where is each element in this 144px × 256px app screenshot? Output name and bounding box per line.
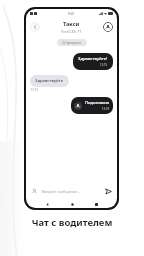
staticText: Такси xyxy=(63,20,80,28)
staticText: 22 февраля xyxy=(62,40,82,45)
staticText: 12:16 xyxy=(31,88,39,92)
staticText: 12:18 xyxy=(102,107,110,111)
button[interactable]: Driver profile xyxy=(103,22,113,32)
staticText: Ford CEE, Т1 xyxy=(61,29,82,34)
button[interactable]: Back xyxy=(43,200,51,208)
button[interactable]: Recents xyxy=(92,200,100,208)
staticText: 12:15 xyxy=(100,63,108,67)
button[interactable]: Home xyxy=(68,200,76,208)
staticText: Введите сообщение ... xyxy=(42,189,81,194)
staticText: Здравствуйте xyxy=(35,78,64,84)
button[interactable]: Подъезжаю xyxy=(71,97,113,114)
button[interactable]: Здравствуйте! xyxy=(73,53,113,70)
button[interactable]: Attach contact xyxy=(30,187,39,196)
button[interactable]: Здравствуйте xyxy=(30,75,69,87)
staticText: Подъезжаю xyxy=(85,100,110,106)
button[interactable]: Введите сообщение ... xyxy=(42,189,101,194)
staticText: 9:41 xyxy=(68,12,75,16)
button[interactable]: Send xyxy=(104,187,113,196)
staticText: Здравствуйте! xyxy=(78,56,108,62)
button[interactable]: Back xyxy=(30,22,40,32)
staticText: Чат с водителем xyxy=(0,216,144,229)
